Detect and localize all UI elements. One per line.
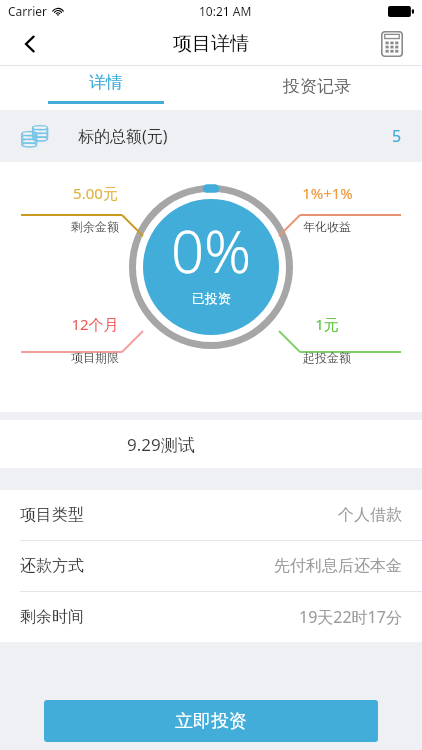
staticText: 个人借款 <box>338 505 402 525</box>
staticText: 标的总额(元) <box>78 125 168 147</box>
button[interactable]: 还款方式 <box>0 540 422 591</box>
button[interactable]: 剩余时间 <box>0 591 422 642</box>
staticText: 9.29测试 <box>127 433 195 456</box>
staticText: 项目类型 <box>20 505 84 525</box>
staticText: 1%+1% <box>302 183 353 203</box>
staticText: 详情 <box>89 72 123 93</box>
staticText: 5.00元 <box>73 183 118 203</box>
staticText: 剩余时间 <box>20 607 84 627</box>
button[interactable]: Calculator <box>370 22 414 66</box>
staticText: 起投金额 <box>303 350 351 365</box>
staticText: 年化收益 <box>303 219 351 234</box>
button[interactable]: 投资记录 <box>211 66 422 110</box>
staticText: 立即投资 <box>175 710 247 733</box>
staticText: 19天22时17分 <box>299 606 402 628</box>
staticText: Carrier <box>8 3 48 19</box>
staticText: 1元 <box>315 314 339 334</box>
staticText: 项目期限 <box>71 350 119 365</box>
button[interactable]: 标的总额(元) <box>0 110 422 162</box>
button[interactable]: 立即投资 <box>44 700 378 742</box>
staticText: 5 <box>392 125 402 147</box>
staticText: 剩余金额 <box>71 219 119 234</box>
button[interactable]: 详情 <box>0 66 211 110</box>
staticText: 12个月 <box>71 314 119 334</box>
staticText: 还款方式 <box>20 556 84 576</box>
staticText: 先付利息后还本金 <box>274 556 402 576</box>
staticText: 0% <box>171 211 252 290</box>
staticText: 投资记录 <box>283 76 351 97</box>
staticText: 10:21 AM <box>199 3 252 19</box>
staticText: 项目详情 <box>173 32 249 56</box>
staticText: 已投资 <box>192 290 231 306</box>
button[interactable]: Back <box>8 22 52 66</box>
button[interactable]: 项目类型 <box>0 490 422 540</box>
